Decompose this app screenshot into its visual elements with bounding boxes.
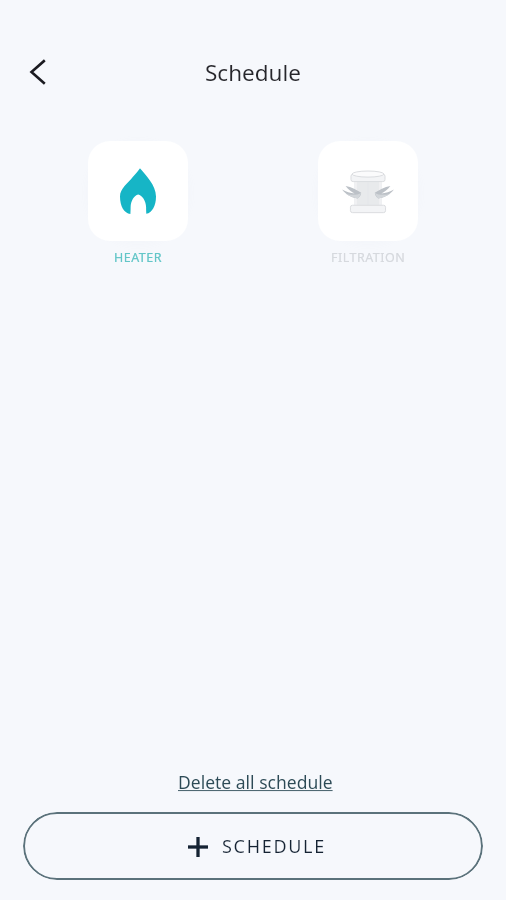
staticText: Schedule (205, 57, 301, 88)
staticText: HEATER (114, 249, 163, 266)
button[interactable]: Delete all schedule (170, 768, 341, 796)
staticText: SCHEDULE (222, 834, 326, 859)
staticText: FILTRATION (331, 249, 406, 266)
button[interactable]: SCHEDULE (23, 812, 483, 880)
button[interactable] (318, 141, 418, 241)
button[interactable] (88, 141, 188, 241)
button[interactable]: Back (14, 50, 58, 94)
staticText: Delete all schedule (178, 770, 333, 794)
